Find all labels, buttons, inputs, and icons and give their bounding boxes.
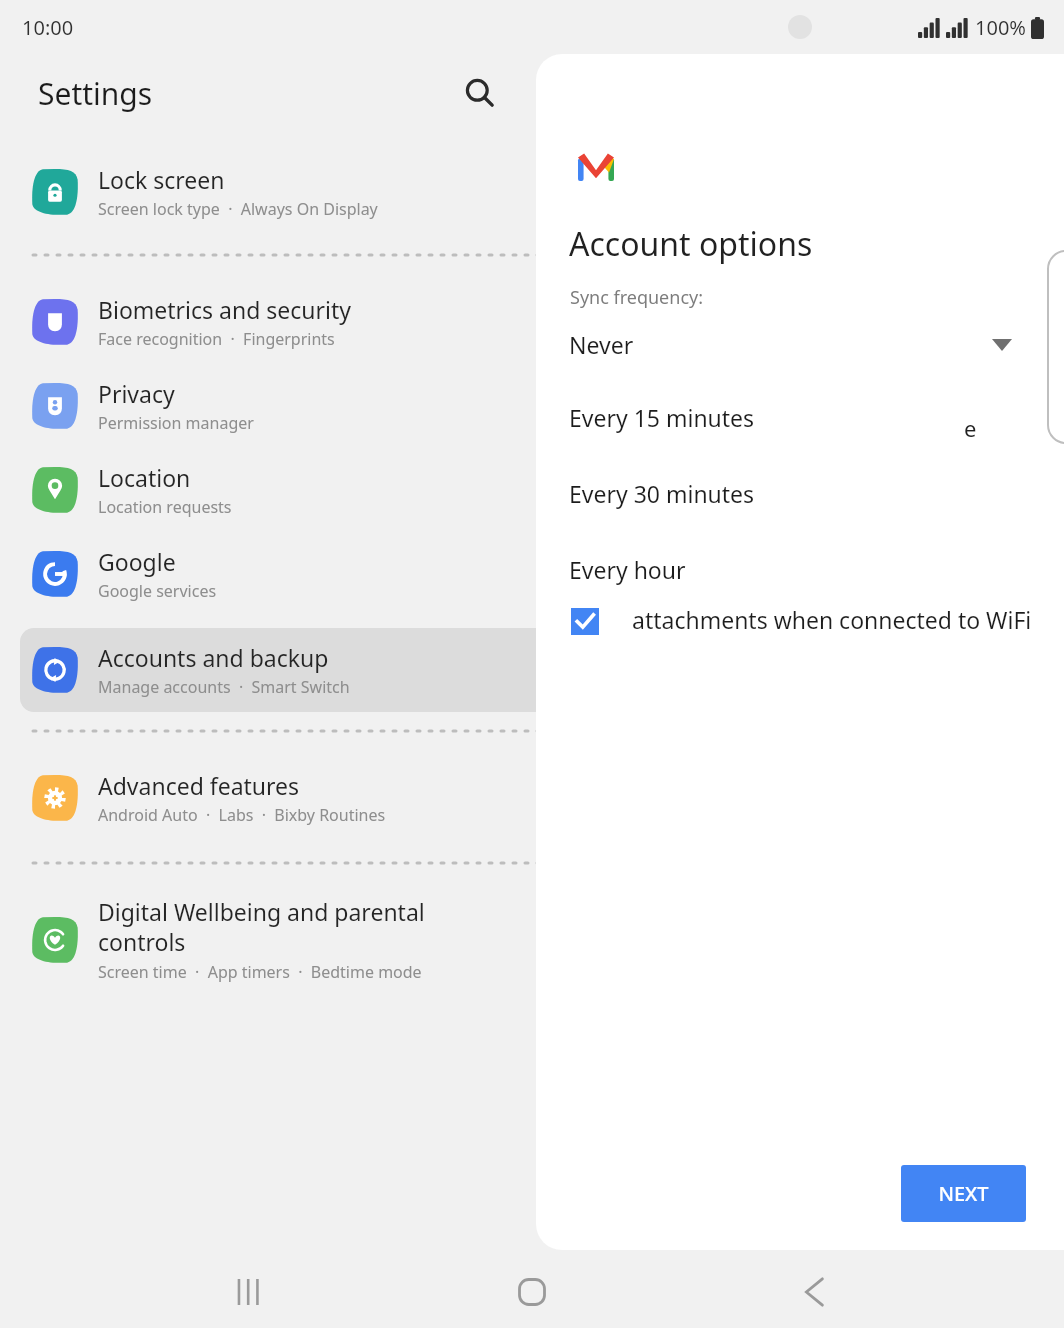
button[interactable]: NEXT [901, 1165, 1026, 1222]
staticText: Account options [569, 222, 813, 266]
button[interactable]: Biometrics and security [20, 280, 1044, 364]
staticText: Permission manager [98, 412, 254, 434]
button[interactable]: Never [554, 309, 964, 379]
button[interactable]: Search [452, 65, 508, 121]
staticText: attachments when connected to WiFi [632, 604, 1032, 635]
staticText: Screen time · App timers · Bedtime mode [98, 961, 422, 983]
staticText: Sync frequency: [570, 285, 704, 310]
staticText: Advanced features [98, 770, 300, 801]
staticText: Privacy [98, 378, 175, 409]
button[interactable]: Digital Wellbeing and parental controls [20, 888, 1044, 991]
staticText: Google services [98, 580, 217, 602]
button[interactable]: Download attachments over WiFi [568, 604, 602, 638]
staticText: Manage accounts · Smart Switch [98, 676, 350, 698]
staticText: 100% [975, 14, 1026, 41]
button[interactable]: Accounts and backup [20, 628, 1044, 712]
staticText: Settings [38, 73, 153, 114]
staticText: Location requests [98, 496, 232, 518]
staticText: Every 30 minutes [569, 478, 755, 509]
staticText: Android Auto · Labs · Bixby Routines [98, 804, 386, 826]
staticText: Biometrics and security [98, 294, 352, 325]
staticText: Lock screen [98, 164, 225, 195]
staticText: Location [98, 462, 191, 493]
button[interactable]: Back [782, 1260, 846, 1324]
button[interactable]: Home [500, 1260, 564, 1324]
staticText: Screen lock type · Always On Display [98, 198, 378, 220]
staticText: Accounts and backup [98, 642, 329, 673]
staticText: NEXT [938, 1180, 989, 1207]
staticText: Every hour [569, 554, 686, 585]
staticText: Never [569, 329, 634, 360]
button[interactable]: Every 15 minutes [554, 379, 964, 455]
button[interactable]: Location [20, 448, 1044, 532]
staticText: Face recognition · Fingerprints [98, 328, 335, 350]
button[interactable]: Advanced features [20, 756, 1044, 840]
staticText: 10:00 [22, 14, 74, 41]
staticText: Every 15 minutes [569, 402, 755, 433]
button[interactable]: Lock screen [20, 150, 1044, 234]
staticText: Digital Wellbeing and parental controls [98, 896, 498, 958]
button[interactable]: Every hour [554, 531, 964, 607]
staticText: Google [98, 546, 176, 577]
button[interactable]: Privacy [20, 364, 1044, 448]
staticText: e [964, 413, 977, 443]
button[interactable]: Every 30 minutes [554, 455, 964, 531]
button[interactable]: Recents [218, 1260, 282, 1324]
button[interactable]: Google [20, 532, 1044, 616]
